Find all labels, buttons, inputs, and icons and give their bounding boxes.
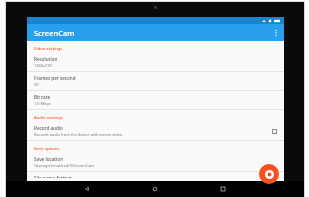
button[interactable]: Start recording	[259, 164, 279, 184]
button[interactable]: More options	[268, 25, 284, 41]
staticText: Save options	[34, 146, 60, 152]
button[interactable]: Record audio	[27, 122, 284, 140]
button[interactable]: Save location	[27, 153, 284, 171]
staticText: 1.0 Mbps	[34, 101, 51, 106]
staticText: Frames per second	[34, 75, 76, 81]
staticText: Bit rate	[34, 94, 51, 100]
staticText: Save location	[34, 156, 64, 162]
staticText: Video settings	[34, 46, 63, 52]
staticText: ScreenCam	[34, 28, 75, 38]
staticText: /storage/emulated/0/ScreenCam	[34, 163, 94, 168]
staticText: File name format	[34, 175, 72, 178]
staticText: Resolution	[34, 56, 58, 62]
staticText: 1280x720	[34, 63, 52, 68]
staticText: Audio settings	[34, 115, 63, 121]
button[interactable]: Recent apps	[217, 183, 229, 195]
staticText: 30	[34, 82, 39, 87]
button[interactable]: Home	[149, 183, 161, 195]
button[interactable]: Frames per second	[27, 72, 284, 90]
button[interactable]: File name format	[27, 172, 284, 181]
staticText: Record audio	[34, 125, 63, 131]
button[interactable]: Resolution	[27, 53, 284, 71]
button[interactable]: Back	[81, 183, 93, 195]
staticText: Records audio from the device with scree…	[34, 132, 123, 137]
button[interactable]: Bit rate	[27, 91, 284, 109]
